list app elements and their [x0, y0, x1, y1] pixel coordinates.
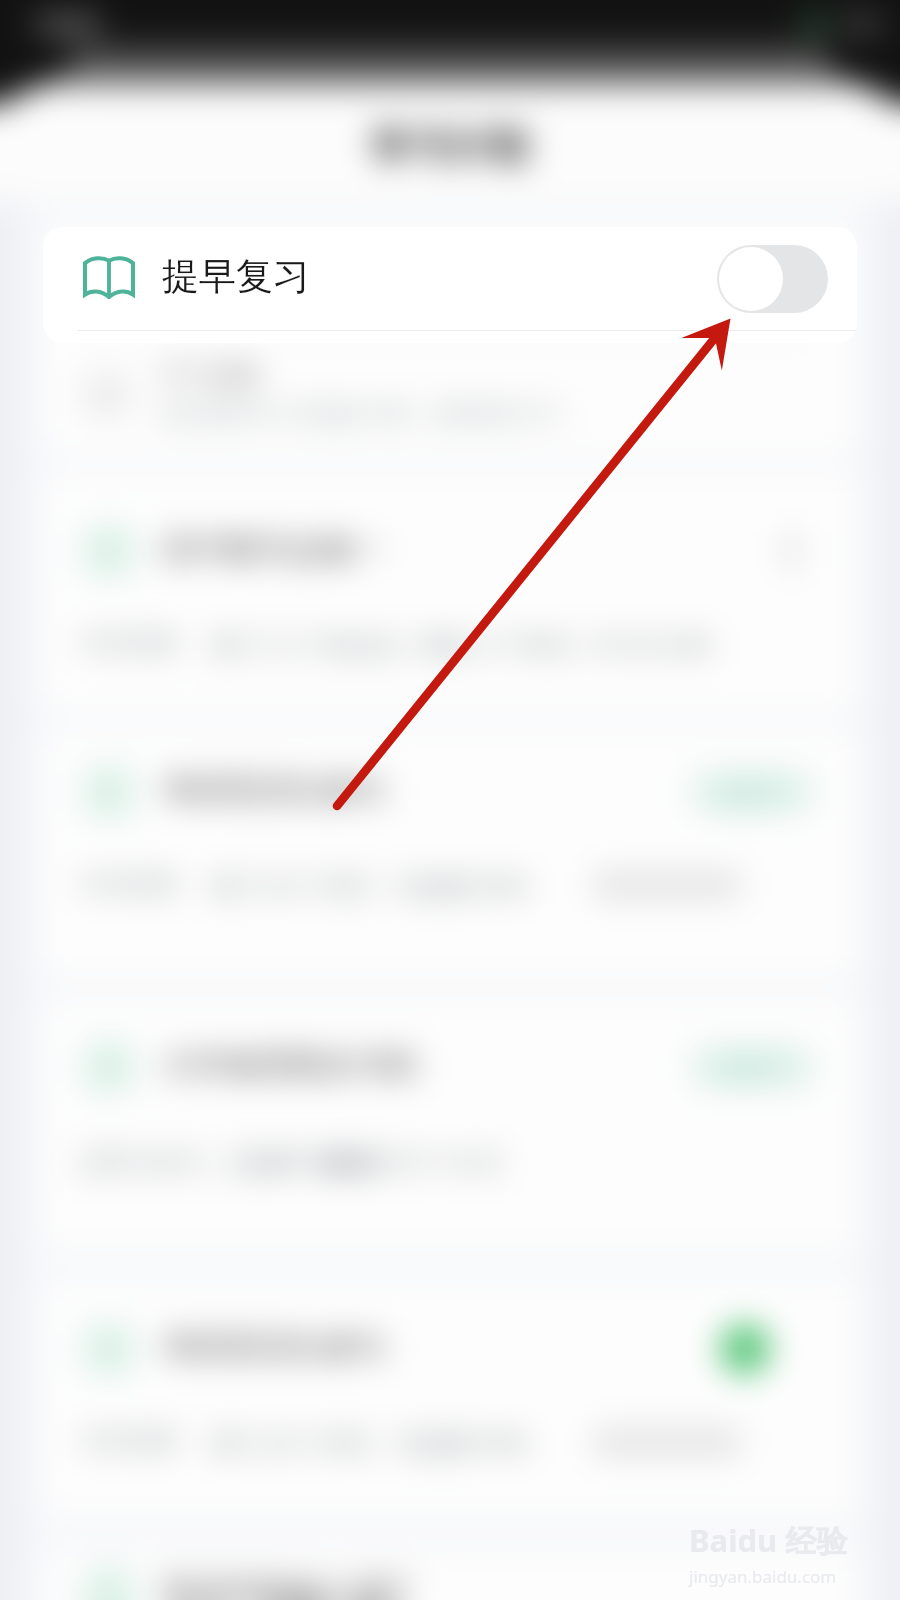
- staticText: 连续打卡 14 天: [323, 1143, 503, 1180]
- staticText: 提早复习: [162, 253, 310, 300]
- staticText: 高中数学必修一: [161, 529, 385, 569]
- staticText: 去复习: [716, 1053, 788, 1083]
- staticText: 考研英语长难句: [161, 770, 385, 810]
- staticText: 考研英语长难句: [161, 1327, 385, 1367]
- staticText: 复习 20 个词汇 · 完成度 60%: [211, 1425, 529, 1459]
- staticText: 复习 12 个知识点 · 剩余 3 个单元 · 约 20 分钟: [211, 627, 711, 661]
- staticText: 学习提醒: [161, 359, 261, 390]
- staticText: 学习计划: [371, 122, 527, 171]
- staticText: 去复习: [716, 778, 788, 808]
- staticText: 英语四级核心词汇: [161, 1572, 417, 1600]
- staticText: Baidu 经验: [689, 1519, 848, 1561]
- staticText: 大学物理期末冲刺: [161, 1045, 417, 1085]
- staticText: 复习 20 个词汇 · 完成度 60%: [211, 868, 529, 902]
- button[interactable]: 提早复习: [43, 227, 857, 343]
- button[interactable]: 提早复习开关: [717, 245, 828, 313]
- staticText: jingyan.baidu.com: [689, 1565, 837, 1588]
- staticText: 正确率 86%: [225, 1143, 367, 1180]
